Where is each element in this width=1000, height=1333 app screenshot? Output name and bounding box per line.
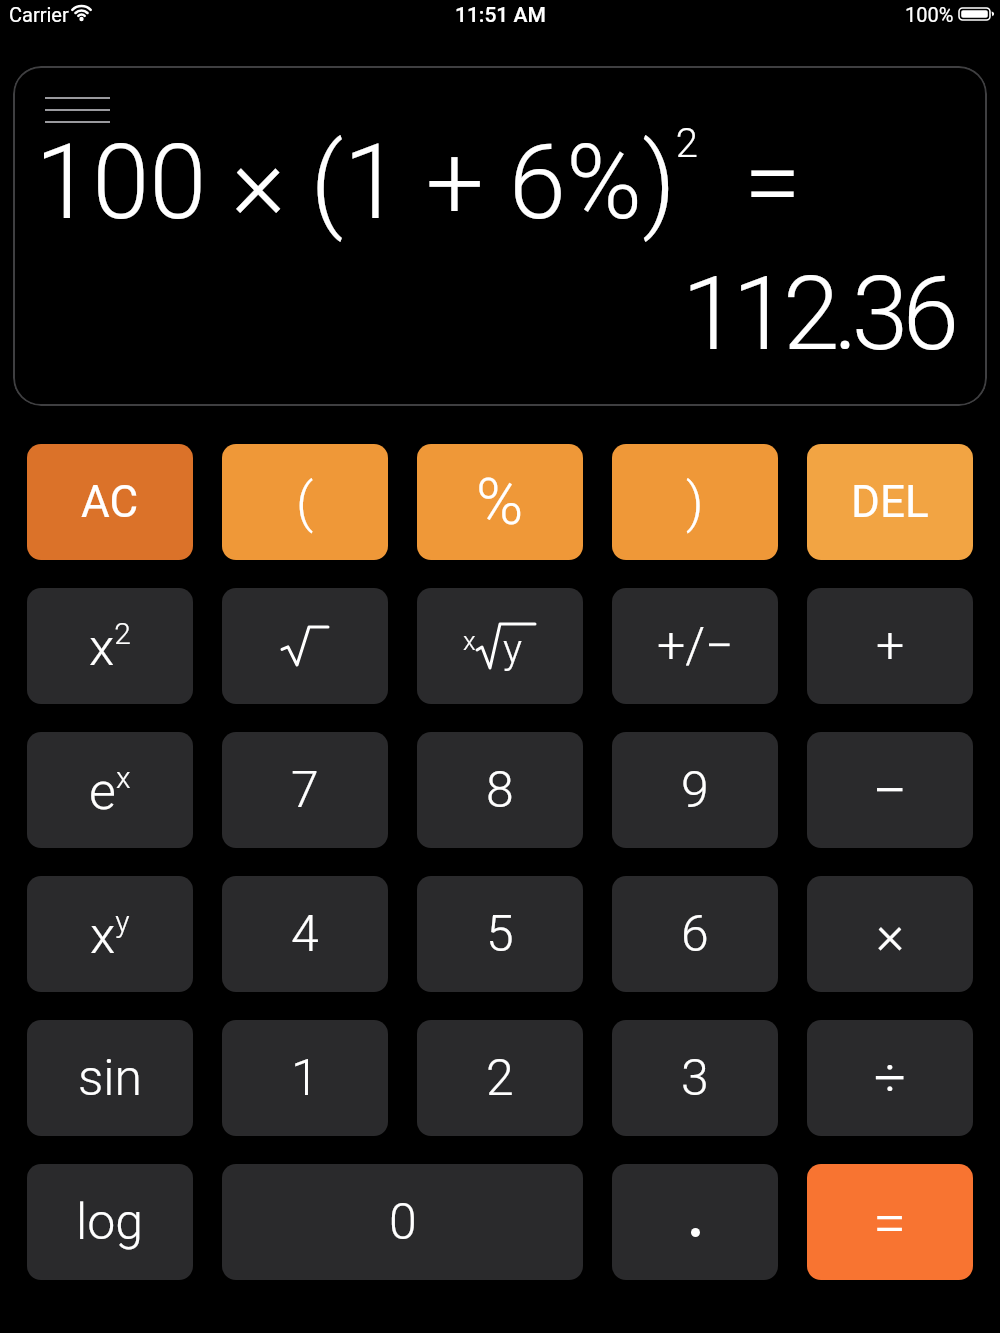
button[interactable]: × <box>807 876 973 992</box>
staticText: ) <box>686 471 704 534</box>
staticText: 9 <box>681 761 709 820</box>
staticText: 100% <box>905 3 954 26</box>
button[interactable] <box>45 97 110 123</box>
button[interactable]: 2 <box>417 1020 583 1136</box>
button[interactable]: sin <box>27 1020 193 1136</box>
staticText: 112.36 <box>13 254 953 374</box>
button[interactable]: − <box>807 732 973 848</box>
button[interactable]: 1 <box>222 1020 388 1136</box>
button[interactable]: log <box>27 1164 193 1280</box>
button[interactable]: 4 <box>222 876 388 992</box>
button[interactable]: 5 <box>417 876 583 992</box>
button[interactable] <box>222 588 388 704</box>
button[interactable]: 7 <box>222 732 388 848</box>
staticText: 3 <box>681 1049 709 1108</box>
staticText: % <box>476 465 524 540</box>
button[interactable]: % <box>417 444 583 560</box>
staticText: Carrier <box>9 3 69 26</box>
staticText: 11:51 AM <box>455 3 546 28</box>
staticText: × <box>876 903 905 966</box>
button[interactable]: ex <box>27 732 193 848</box>
staticText: − <box>872 754 908 827</box>
button[interactable]: AC <box>27 444 193 560</box>
button[interactable]: xy <box>27 876 193 992</box>
staticText: 5 <box>486 905 514 964</box>
button[interactable]: x <box>417 588 583 704</box>
button[interactable]: = <box>807 1164 973 1280</box>
staticText: 1 <box>291 1049 319 1108</box>
button[interactable] <box>612 1164 778 1280</box>
button[interactable]: ( <box>222 444 388 560</box>
button[interactable]: x2 <box>27 588 193 704</box>
staticText: ex <box>89 760 131 821</box>
staticText: 100 × (1 + 6%)2 = <box>35 120 802 243</box>
button[interactable]: ÷ <box>807 1020 973 1136</box>
button[interactable]: 0 <box>222 1164 583 1280</box>
staticText: x <box>463 626 476 656</box>
staticText: 7 <box>291 761 319 820</box>
staticText: 4 <box>291 905 319 964</box>
staticText: log <box>76 1193 144 1252</box>
staticText: x2 <box>89 616 131 677</box>
staticText: xy <box>90 904 130 965</box>
staticText: sin <box>78 1049 143 1108</box>
staticText: = <box>873 1187 907 1257</box>
staticText: 2 <box>486 1049 514 1108</box>
button[interactable]: 6 <box>612 876 778 992</box>
staticText: + <box>876 617 905 676</box>
staticText: DEL <box>851 476 929 528</box>
staticText: AC <box>81 476 139 528</box>
staticText: 8 <box>486 761 514 820</box>
button[interactable]: 8 <box>417 732 583 848</box>
button[interactable]: + <box>807 588 973 704</box>
staticText: 6 <box>681 905 709 964</box>
button[interactable]: 9 <box>612 732 778 848</box>
button[interactable]: DEL <box>807 444 973 560</box>
staticText: ( <box>296 471 314 534</box>
staticText: y <box>503 626 523 673</box>
button[interactable]: 3 <box>612 1020 778 1136</box>
button[interactable]: ) <box>612 444 778 560</box>
button[interactable]: +/− <box>612 588 778 704</box>
staticText: 0 <box>389 1193 417 1252</box>
staticText: ÷ <box>874 1045 906 1111</box>
staticText: +/− <box>657 617 734 676</box>
